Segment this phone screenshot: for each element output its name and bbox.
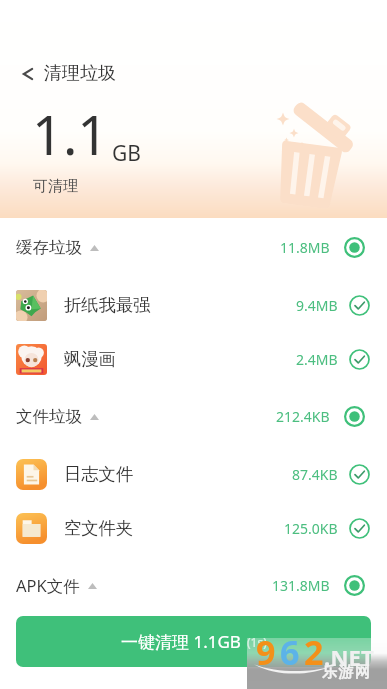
button[interactable]: Checked: [349, 464, 370, 485]
staticText: 125.0KB: [284, 519, 338, 538]
staticText: .NET: [324, 642, 374, 672]
staticText: 2.4MB: [296, 350, 338, 369]
staticText: 缓存垃圾: [16, 237, 82, 258]
staticText: 9: [256, 629, 276, 675]
button[interactable]: 日志文件: [0, 447, 387, 501]
staticText: GB: [112, 139, 141, 168]
button[interactable]: Selected: [344, 575, 365, 596]
button[interactable]: 缓存垃圾: [0, 217, 387, 278]
button[interactable]: Selected: [344, 237, 365, 258]
staticText: 乐游网: [322, 663, 372, 682]
button[interactable]: Checked: [349, 349, 370, 370]
staticText: 飒漫画: [64, 348, 116, 370]
button[interactable]: Checked: [349, 518, 370, 539]
staticText: 清理垃圾: [44, 62, 116, 85]
staticText: 2: [304, 629, 324, 675]
button[interactable]: 空文件夹: [0, 501, 387, 555]
staticText: 6: [280, 629, 300, 675]
staticText: APK文件: [16, 574, 80, 597]
staticText: 11.8MB: [280, 238, 330, 257]
staticText: 日志文件: [64, 463, 134, 485]
button[interactable]: APK文件: [0, 555, 387, 616]
staticText: 212.4KB: [276, 407, 330, 426]
button[interactable]: Back: [15, 56, 128, 91]
staticText: 文件垃圾: [16, 406, 82, 427]
button[interactable]: 折纸我最强: [0, 278, 387, 332]
other: Back: [23, 65, 33, 83]
staticText: 9.4MB: [296, 296, 338, 315]
button[interactable]: 文件垃圾: [0, 386, 387, 447]
staticText: 一键清理 1.1GB: [121, 630, 241, 653]
staticText: 折纸我最强: [64, 294, 151, 316]
staticText: 1.1: [32, 97, 109, 171]
button[interactable]: 一键清理 1.1GB: [16, 616, 371, 667]
staticText: 87.4KB: [292, 465, 338, 484]
button[interactable]: 飒漫画: [0, 332, 387, 386]
staticText: 可清理: [33, 177, 78, 196]
staticText: 131.8MB: [272, 576, 330, 595]
staticText: (1s): [247, 634, 267, 650]
button[interactable]: Selected: [344, 406, 365, 427]
staticText: 空文件夹: [64, 517, 134, 539]
button[interactable]: Checked: [349, 295, 370, 316]
